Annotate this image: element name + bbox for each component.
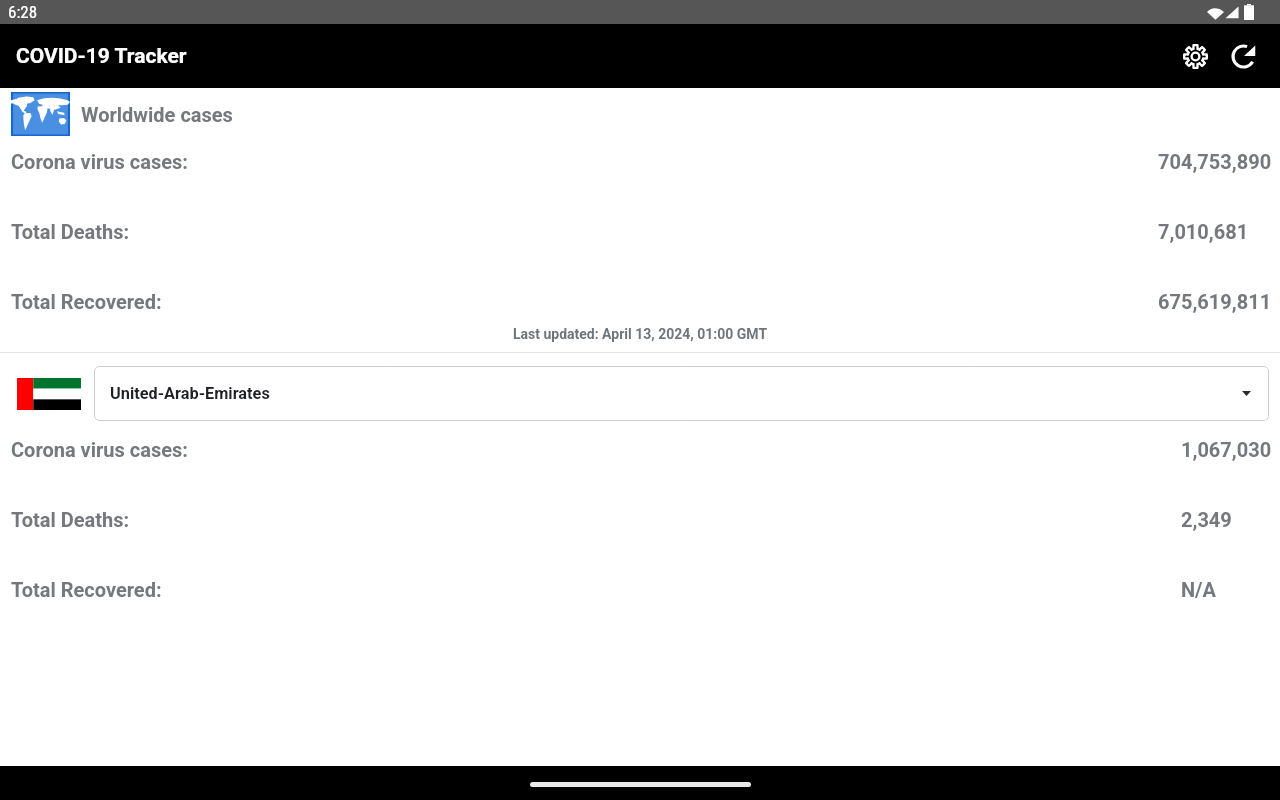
staticText: 704,753,890 — [1158, 150, 1272, 173]
button[interactable]: N/A — [1181, 554, 1272, 624]
staticText: 6:28 — [8, 2, 38, 22]
button[interactable]: Corona virus cases: — [11, 414, 1181, 484]
button[interactable]: Worldwide cases — [0, 92, 1280, 136]
button[interactable]: Total Deaths: — [11, 484, 1181, 554]
button[interactable]: 675,619,811 — [1158, 266, 1272, 336]
staticText: Total Deaths: — [11, 220, 130, 243]
staticText: Corona virus cases: — [11, 438, 188, 461]
button[interactable]: Refresh — [1219, 32, 1267, 80]
staticText: United-Arab-Emirates — [110, 384, 270, 403]
staticText: Worldwide cases — [81, 103, 233, 126]
button[interactable]: Settings — [1171, 32, 1219, 80]
staticText: N/A — [1181, 578, 1216, 601]
staticText: 2,349 — [1181, 508, 1232, 531]
staticText: 675,619,811 — [1158, 290, 1272, 313]
staticText: Last updated: April 13, 2024, 01:00 GMT — [0, 326, 1280, 342]
staticText: Total Recovered: — [11, 290, 162, 313]
staticText: 7,010,681 — [1158, 220, 1249, 243]
staticText: Corona virus cases: — [11, 150, 188, 173]
button[interactable]: 7,010,681 — [1158, 196, 1272, 266]
button[interactable]: 1,067,030 — [1181, 414, 1272, 484]
button[interactable]: 2,349 — [1181, 484, 1272, 554]
button[interactable]: Total Recovered: — [11, 266, 1158, 336]
button[interactable]: United-Arab-Emirates — [94, 366, 1269, 421]
staticText: COVID-19 Tracker — [16, 44, 187, 69]
button[interactable]: Corona virus cases: — [11, 126, 1158, 196]
staticText: Total Recovered: — [11, 578, 162, 601]
button[interactable]: 704,753,890 — [1158, 126, 1272, 196]
staticText: Total Deaths: — [11, 508, 130, 531]
staticText: 1,067,030 — [1181, 438, 1272, 461]
button[interactable]: Total Deaths: — [11, 196, 1158, 266]
button[interactable]: Total Recovered: — [11, 554, 1181, 624]
